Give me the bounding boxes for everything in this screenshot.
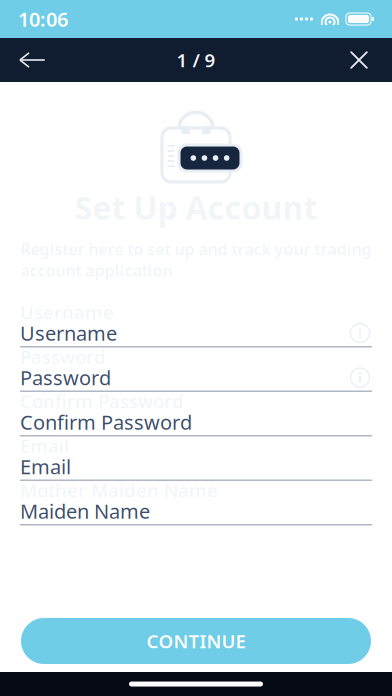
staticText: 1 / 9 xyxy=(176,48,215,72)
button[interactable]: More information about Password xyxy=(348,365,372,389)
staticText: Email xyxy=(20,453,71,480)
staticText: Confirm Password xyxy=(20,389,184,413)
staticText: 10:06 xyxy=(18,6,68,32)
staticText: Username xyxy=(20,300,114,324)
staticText: Maiden Name xyxy=(20,498,150,524)
staticText: Set Up Account xyxy=(74,186,317,228)
staticText: Register here to set up and track your t… xyxy=(20,238,371,281)
staticText: Email xyxy=(20,433,69,458)
staticText: Password xyxy=(20,344,106,369)
button[interactable]: More information about Username xyxy=(348,321,372,345)
staticText: Username xyxy=(20,320,117,346)
staticText: Confirm Password xyxy=(20,409,192,435)
button[interactable]: CONTINUE xyxy=(21,618,371,664)
button[interactable]: Close xyxy=(336,38,382,82)
button[interactable]: Back xyxy=(10,38,56,82)
staticText: Password xyxy=(20,364,111,391)
staticText: Mother Maiden Name xyxy=(20,478,218,502)
staticText: CONTINUE xyxy=(146,629,245,653)
